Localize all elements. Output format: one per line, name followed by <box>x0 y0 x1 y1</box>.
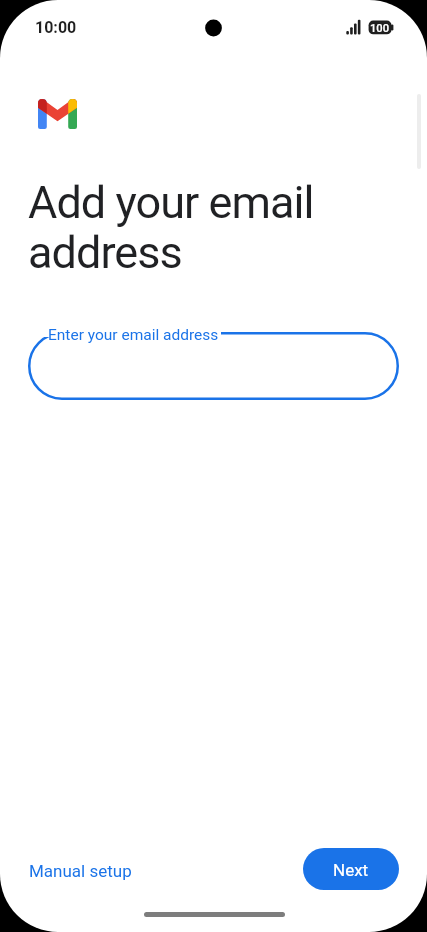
staticText: 100 <box>370 22 390 35</box>
button[interactable]: Enter your email address <box>28 332 399 400</box>
staticText: Enter your email address <box>48 326 219 344</box>
button[interactable]: Next <box>303 848 399 890</box>
staticText: 10:00 <box>35 18 77 37</box>
other: Gmail <box>38 99 77 129</box>
staticText: Next <box>333 860 369 880</box>
staticText: Add your email address <box>28 176 314 279</box>
button[interactable]: Manual setup <box>18 854 143 888</box>
staticText: Manual setup <box>29 861 132 881</box>
